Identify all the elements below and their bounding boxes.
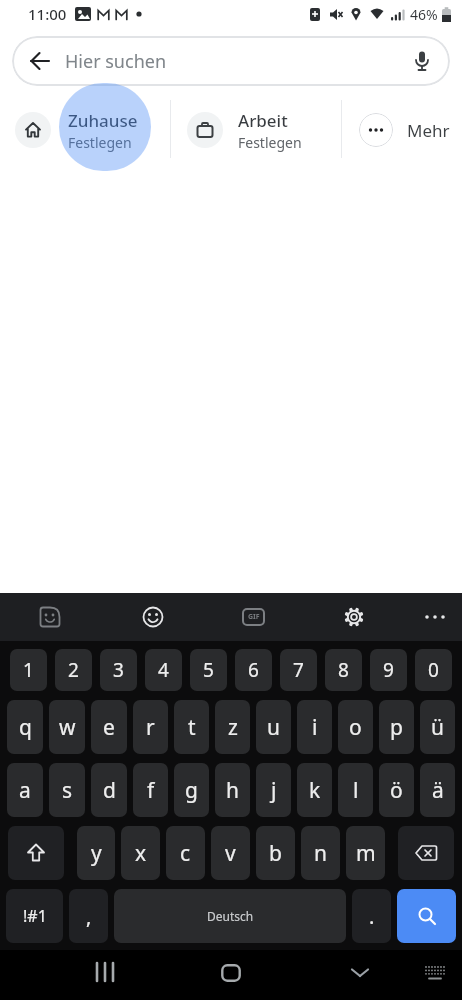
staticText: GIF — [248, 612, 260, 622]
button[interactable]: l — [338, 763, 373, 817]
button[interactable]: a — [7, 763, 43, 817]
button[interactable]: f — [133, 763, 168, 817]
button[interactable]: GIF — [242, 608, 265, 626]
button[interactable]: ä — [420, 763, 455, 817]
staticText: 4 — [158, 657, 169, 683]
button[interactable]: j — [256, 763, 291, 817]
button[interactable]: 1 — [10, 649, 47, 691]
staticText: 11:00 — [28, 4, 67, 24]
staticText: , — [86, 903, 92, 930]
button[interactable] — [221, 964, 241, 982]
button[interactable]: b — [256, 826, 295, 880]
button[interactable] — [411, 50, 433, 72]
button[interactable]: q — [7, 700, 43, 754]
button[interactable] — [351, 968, 369, 978]
staticText: Mehr — [407, 119, 450, 142]
button[interactable]: v — [211, 826, 250, 880]
button[interactable]: e — [91, 700, 127, 754]
button[interactable]: x — [121, 826, 160, 880]
button[interactable]: 2 — [55, 649, 92, 691]
button[interactable] — [424, 606, 446, 628]
button[interactable]: 7 — [280, 649, 317, 691]
button[interactable]: z — [215, 700, 250, 754]
staticText: n — [314, 839, 327, 868]
button[interactable]: c — [166, 826, 205, 880]
staticText: r — [146, 713, 155, 742]
button[interactable] — [39, 606, 61, 628]
button[interactable]: h — [215, 763, 250, 817]
button[interactable]: 4 — [145, 649, 182, 691]
button[interactable]: 8 — [325, 649, 362, 691]
button[interactable] — [398, 826, 454, 880]
button[interactable]: p — [379, 700, 414, 754]
button[interactable] — [8, 826, 64, 880]
staticText: s — [62, 776, 73, 805]
button[interactable]: o — [338, 700, 373, 754]
staticText: x — [135, 839, 147, 868]
button[interactable]: 5 — [190, 649, 227, 691]
button[interactable]: k — [297, 763, 332, 817]
button[interactable]: !#1 — [6, 889, 63, 943]
button[interactable]: d — [91, 763, 127, 817]
staticText: Hier suchen — [65, 49, 167, 74]
button[interactable]: r — [133, 700, 168, 754]
button[interactable]: m — [346, 826, 385, 880]
button[interactable]: Hier suchen — [12, 36, 450, 86]
button[interactable] — [343, 606, 365, 628]
button[interactable]: , — [69, 889, 108, 943]
button[interactable]: Deutsch — [114, 889, 346, 943]
staticText: 1 — [23, 657, 34, 683]
button[interactable] — [29, 50, 51, 72]
staticText: z — [228, 713, 238, 742]
staticText: 6 — [248, 657, 259, 683]
button[interactable]: 3 — [100, 649, 137, 691]
staticText: . — [369, 903, 375, 930]
button[interactable]: Mehr — [359, 86, 450, 174]
staticText: o — [349, 713, 362, 742]
staticText: 7 — [293, 657, 304, 683]
staticText: y — [91, 839, 102, 868]
button[interactable]: t — [174, 700, 209, 754]
staticText: Festlegen — [68, 133, 132, 152]
button[interactable] — [95, 962, 117, 982]
staticText: m — [356, 839, 376, 868]
staticText: Festlegen — [238, 133, 302, 152]
button[interactable]: i — [297, 700, 332, 754]
staticText: e — [103, 713, 115, 742]
staticText: ä — [432, 776, 444, 805]
button[interactable] — [424, 965, 446, 981]
staticText: 46% — [410, 5, 438, 24]
staticText: u — [267, 713, 280, 742]
staticText: Zuhause — [68, 109, 138, 132]
button[interactable] — [142, 606, 164, 628]
staticText: t — [188, 713, 196, 742]
button[interactable] — [397, 889, 456, 943]
button[interactable]: . — [352, 889, 391, 943]
staticText: j — [271, 776, 277, 805]
button[interactable]: u — [256, 700, 291, 754]
button[interactable]: 6 — [235, 649, 272, 691]
button[interactable]: y — [77, 826, 115, 880]
button[interactable]: n — [301, 826, 340, 880]
staticText: !#1 — [23, 905, 47, 927]
staticText: b — [269, 839, 282, 868]
staticText: 5 — [203, 657, 214, 683]
button[interactable]: s — [49, 763, 85, 817]
button[interactable]: ü — [420, 700, 455, 754]
staticText: 9 — [383, 657, 394, 683]
button[interactable]: w — [49, 700, 85, 754]
button[interactable]: 0 — [415, 649, 452, 691]
button[interactable]: 9 — [370, 649, 407, 691]
button[interactable]: Zuhause — [15, 86, 138, 174]
button[interactable]: g — [174, 763, 209, 817]
staticText: 3 — [113, 657, 124, 683]
button[interactable]: Arbeit — [187, 86, 302, 174]
staticText: a — [19, 776, 31, 805]
staticText: g — [185, 776, 198, 805]
staticText: w — [59, 713, 76, 742]
button[interactable]: ö — [379, 763, 414, 817]
staticText: i — [312, 713, 318, 742]
staticText: ü — [431, 713, 444, 742]
staticText: v — [225, 839, 236, 868]
staticText: 8 — [338, 657, 349, 683]
